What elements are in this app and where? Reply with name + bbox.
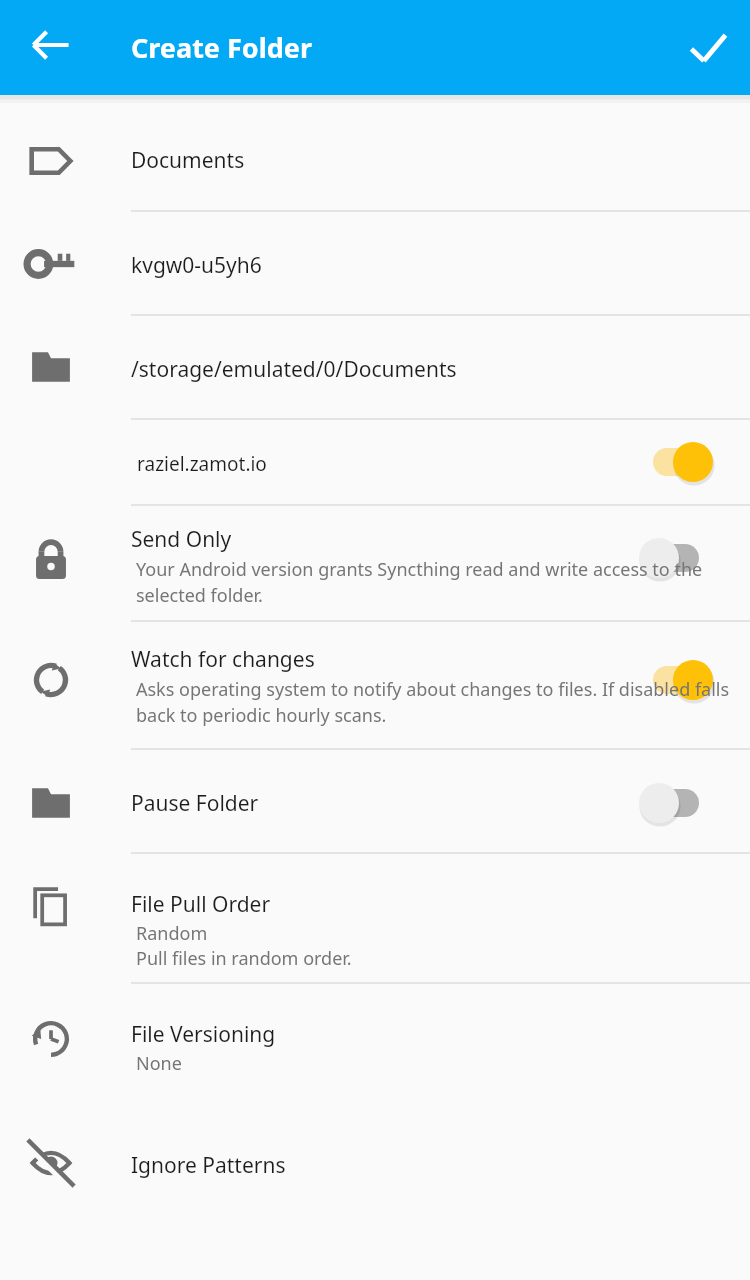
staticText: Random (136, 921, 208, 946)
button[interactable]: kvgw0-u5yh6 (0, 211, 750, 315)
button[interactable]: Send Only (0, 505, 750, 621)
button[interactable]: Save (673, 13, 743, 83)
staticText: Pull files in random order. (136, 946, 352, 971)
staticText: Create Folder (131, 29, 313, 66)
staticText: None (136, 1051, 182, 1076)
staticText: raziel.zamot.io (137, 451, 267, 477)
button[interactable]: Ignore Patterns (0, 1110, 750, 1214)
button[interactable]: Watch for changes (0, 621, 750, 749)
button[interactable]: Pause Folder (0, 749, 750, 853)
staticText: Asks operating system to notify about ch… (136, 677, 736, 727)
staticText: Send Only (131, 525, 232, 554)
staticText: Watch for changes (131, 645, 315, 674)
staticText: Pause Folder (131, 789, 259, 818)
button[interactable]: File Pull Order (0, 853, 750, 983)
staticText: Ignore Patterns (131, 1151, 286, 1180)
button[interactable]: Navigate up (16, 10, 86, 80)
staticText: File Versioning (131, 1020, 276, 1049)
staticText: Your Android version grants Syncthing re… (136, 557, 744, 607)
button[interactable]: /storage/emulated/0/Documents (0, 315, 750, 419)
button[interactable]: raziel.zamot.io (0, 419, 750, 505)
staticText: Documents (131, 146, 245, 175)
staticText: kvgw0-u5yh6 (131, 251, 262, 280)
button[interactable]: File Versioning (0, 983, 750, 1103)
staticText: /storage/emulated/0/Documents (131, 355, 457, 384)
staticText: File Pull Order (131, 890, 271, 919)
button[interactable]: Documents (0, 96, 750, 211)
